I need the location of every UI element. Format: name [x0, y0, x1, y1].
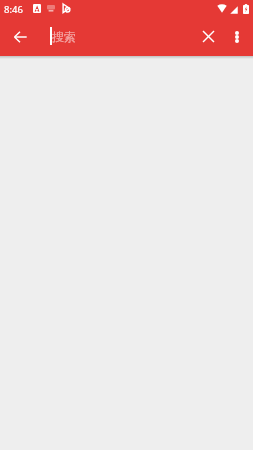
- button[interactable]: Back: [1, 18, 39, 56]
- staticText: 搜索: [52, 29, 76, 44]
- button[interactable]: Clear: [191, 19, 225, 53]
- button[interactable]: More options: [221, 21, 253, 53]
- staticText: 8:46: [4, 3, 23, 16]
